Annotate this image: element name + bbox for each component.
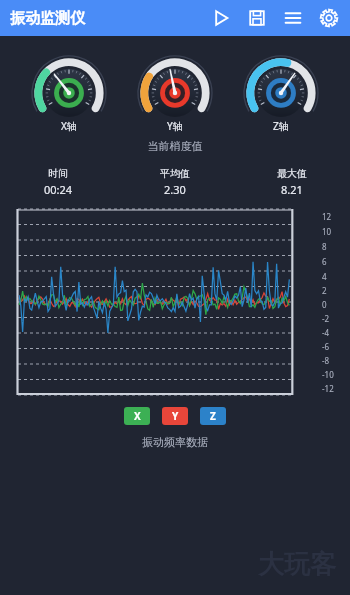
button[interactable]: Play [208, 5, 234, 31]
staticText: 00:24 [44, 182, 73, 197]
staticText: 最大值 [277, 167, 307, 180]
staticText: 平均值 [160, 167, 190, 180]
staticText: -6 [322, 341, 330, 352]
staticText: X [134, 409, 141, 423]
staticText: 8.21 [281, 182, 303, 197]
staticText: -4 [322, 327, 330, 338]
staticText: Z轴 [273, 119, 289, 133]
staticText: 0 [322, 299, 327, 310]
staticText: X轴 [61, 119, 77, 133]
staticText: 6 [322, 256, 327, 267]
staticText: 2 [322, 285, 327, 296]
staticText: 振动监测仪 [10, 9, 85, 28]
staticText: 4 [322, 271, 327, 282]
staticText: -2 [322, 313, 330, 324]
button[interactable]: X [124, 407, 150, 425]
staticText: Y轴 [167, 119, 183, 133]
staticText: -12 [322, 383, 334, 394]
staticText: 8 [322, 241, 327, 252]
button[interactable]: Y [162, 407, 188, 425]
staticText: 大玩客 [258, 548, 336, 581]
button[interactable]: Settings [316, 5, 342, 31]
staticText: 12 [322, 211, 332, 222]
staticText: -10 [322, 369, 334, 380]
staticText: 时间 [48, 167, 68, 180]
staticText: 2.30 [164, 182, 186, 197]
staticText: 当前梢度值 [0, 139, 350, 153]
button[interactable]: Z [200, 407, 226, 425]
button[interactable]: Save [244, 5, 270, 31]
staticText: -8 [322, 355, 330, 366]
staticText: Z [210, 409, 216, 423]
staticText: 10 [322, 226, 332, 237]
button[interactable]: Menu [280, 5, 306, 31]
staticText: Y [172, 409, 179, 423]
staticText: 振动频率数据 [0, 435, 350, 449]
